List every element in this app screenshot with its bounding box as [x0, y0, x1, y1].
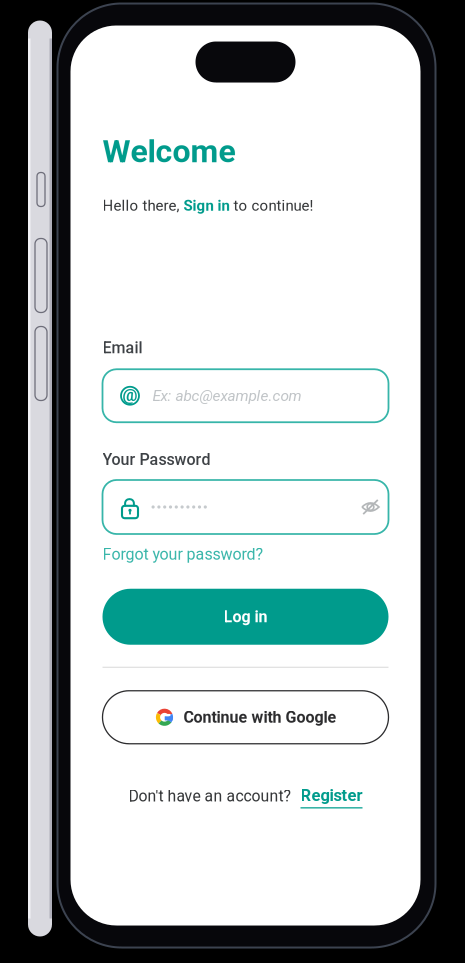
button[interactable]: Register [300, 785, 362, 808]
staticText: Ex: abc@example.com [152, 387, 301, 405]
button[interactable]: Forgot your password? [102, 545, 263, 564]
button[interactable]: Log in [102, 589, 388, 645]
button[interactable]: Continue with Google [102, 691, 388, 744]
staticText: Continue with Google [183, 708, 336, 727]
staticText: @ [122, 385, 137, 405]
staticText: to continue! [229, 197, 313, 214]
staticText: Welcome [102, 132, 235, 170]
staticText: Forgot your password? [102, 545, 263, 564]
staticText: Register [300, 786, 362, 805]
staticText: Log in [223, 607, 267, 626]
staticText: Don't have an account? [128, 787, 290, 805]
staticText: Sign in [183, 197, 229, 214]
staticText: Your Password [102, 450, 210, 469]
button[interactable]: Show password [351, 497, 370, 516]
staticText: Hello there, [102, 197, 183, 214]
staticText: Email [102, 338, 142, 357]
